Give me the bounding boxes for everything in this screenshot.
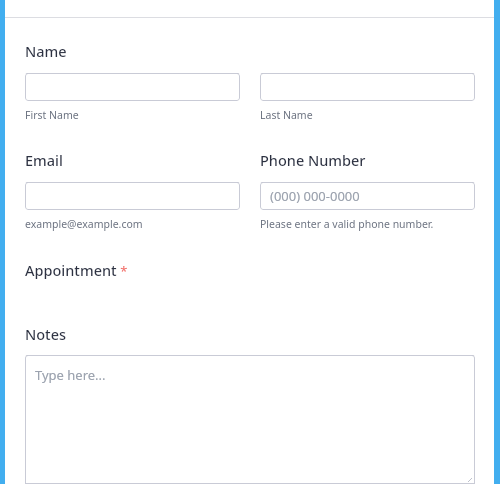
button[interactable]: First Name: [25, 73, 240, 101]
button[interactable]: Email: [25, 182, 240, 210]
staticText: Last Name: [260, 108, 313, 122]
button[interactable]: Phone Number: [260, 182, 475, 210]
button[interactable]: Notes: [25, 355, 475, 484]
staticText: Email: [25, 150, 63, 170]
staticText: Appointment *: [25, 260, 128, 280]
staticText: First Name: [25, 108, 79, 122]
staticText: Type here...: [35, 366, 106, 384]
staticText: example@example.com: [25, 217, 143, 231]
staticText: Name: [25, 41, 67, 61]
button[interactable]: Last Name: [260, 73, 475, 101]
staticText: (000) 000-0000: [270, 187, 360, 205]
staticText: Please enter a valid phone number.: [260, 217, 434, 231]
staticText: Phone Number: [260, 150, 366, 170]
staticText: Notes: [25, 324, 67, 344]
